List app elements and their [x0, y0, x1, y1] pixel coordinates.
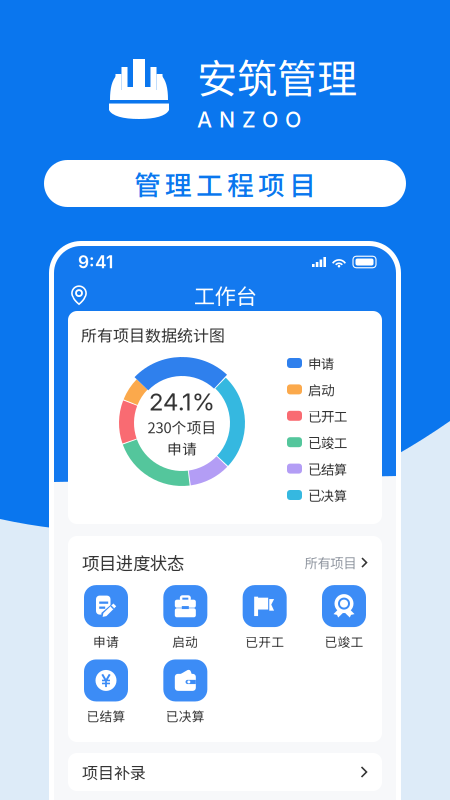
- staticText: 已竣工: [308, 432, 347, 452]
- staticText: 项目进度状态: [82, 550, 184, 575]
- staticText: 已结算: [86, 706, 125, 725]
- staticText: 9:41: [78, 251, 113, 272]
- staticText: 启动: [308, 380, 334, 399]
- staticText: 已结算: [308, 459, 347, 478]
- staticText: 已决算: [308, 485, 347, 505]
- staticText: 管理工程项目: [134, 164, 316, 203]
- staticText: 所有项目: [304, 553, 356, 572]
- button[interactable]: 已开工: [235, 585, 295, 650]
- button[interactable]: 所有项目: [304, 553, 368, 572]
- staticText: 申请: [167, 437, 197, 459]
- button[interactable]: 已决算: [155, 659, 215, 725]
- staticText: ANZOO: [197, 107, 301, 133]
- staticText: 申请: [308, 353, 334, 373]
- button[interactable]: 申请: [76, 585, 136, 650]
- button[interactable]: 已竣工: [314, 585, 374, 650]
- staticText: 230个项目: [147, 416, 216, 437]
- button[interactable]: 项目补录: [68, 753, 382, 791]
- button[interactable]: Location: [67, 283, 91, 307]
- staticText: 24.1%: [149, 387, 215, 416]
- staticText: 项目补录: [82, 760, 146, 784]
- staticText: 已开工: [308, 406, 347, 425]
- staticText: 所有项目数据统计图: [81, 323, 225, 346]
- staticText: 已竣工: [324, 632, 363, 650]
- staticText: 安筑管理: [197, 47, 357, 105]
- staticText: 工作台: [193, 280, 256, 310]
- button[interactable]: 已结算: [76, 659, 136, 725]
- staticText: 启动: [172, 632, 198, 650]
- button[interactable]: 管理工程项目: [44, 160, 406, 207]
- staticText: 已决算: [166, 706, 205, 725]
- button[interactable]: 启动: [155, 585, 215, 650]
- staticText: 已开工: [245, 632, 284, 650]
- staticText: 申请: [93, 632, 119, 650]
